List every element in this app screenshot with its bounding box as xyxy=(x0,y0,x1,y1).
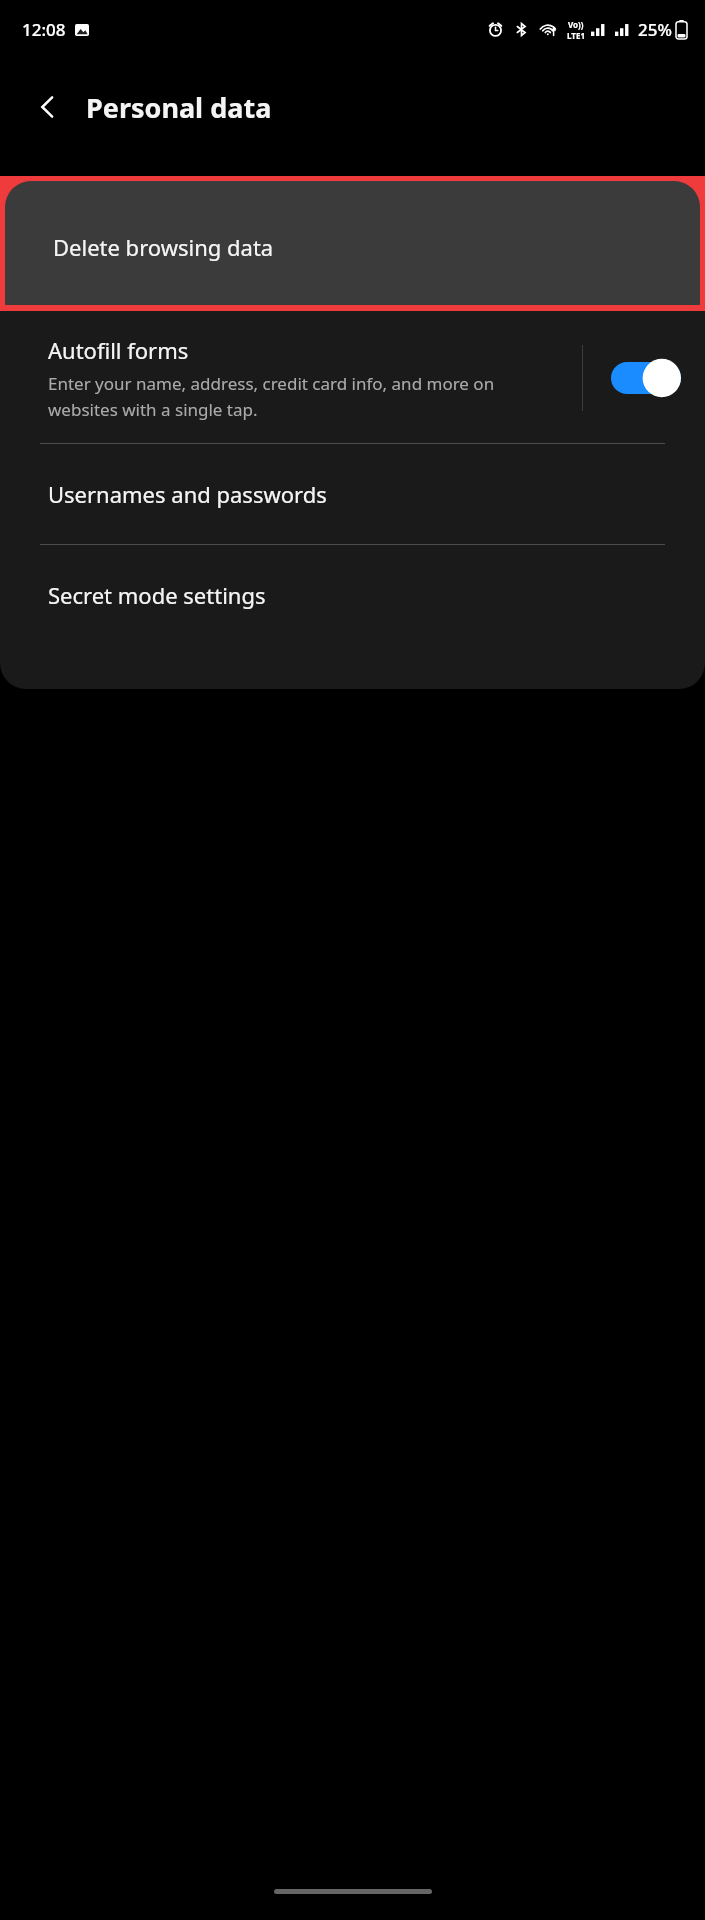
button[interactable]: Delete browsing data xyxy=(5,181,700,305)
button[interactable]: Back xyxy=(24,83,72,131)
staticText: Vo)) xyxy=(568,19,584,30)
staticText: Autofill forms xyxy=(48,335,189,365)
button[interactable]: Autofill forms xyxy=(0,311,705,443)
staticText: LTE1 xyxy=(567,30,585,41)
staticText: Enter your name, address, credit card in… xyxy=(48,372,566,421)
button[interactable]: Autofill forms toggle xyxy=(611,358,681,398)
staticText: 25% xyxy=(638,18,672,41)
staticText: Usernames and passwords xyxy=(48,479,327,509)
button[interactable]: Secret mode settings xyxy=(0,545,705,645)
staticText: Secret mode settings xyxy=(48,580,266,610)
staticText: Personal data xyxy=(86,89,272,126)
button[interactable]: Usernames and passwords xyxy=(0,444,705,544)
staticText: 12:08 xyxy=(22,18,66,41)
staticText: Delete browsing data xyxy=(53,232,274,262)
